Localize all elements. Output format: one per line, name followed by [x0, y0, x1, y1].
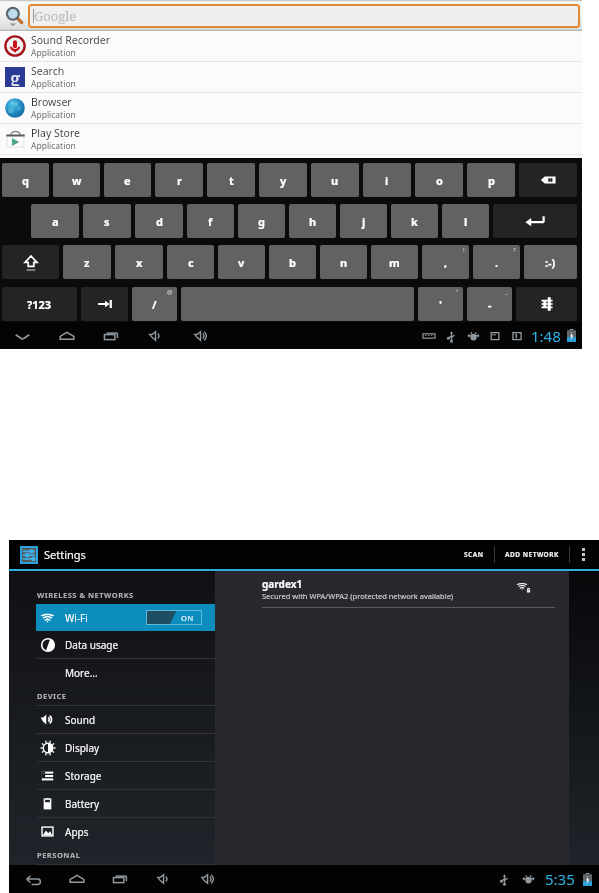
button[interactable]: More options: [570, 540, 596, 569]
staticText: PERSONAL: [37, 850, 81, 860]
staticText: o: [436, 173, 443, 188]
button[interactable]: Hide keyboard: [9, 323, 35, 349]
button[interactable]: Display: [9, 734, 215, 761]
staticText: ?: [513, 246, 516, 254]
button[interactable]: t: [207, 163, 255, 197]
staticText: d: [156, 214, 163, 229]
button[interactable]: Back: [20, 866, 46, 892]
button[interactable]: SHIFT: [2, 245, 59, 279]
staticText: .: [495, 255, 499, 270]
button[interactable]: ,: [422, 245, 469, 279]
button[interactable]: ?123: [2, 287, 77, 321]
button[interactable]: w: [53, 163, 100, 197]
staticText: 5:35: [545, 869, 575, 889]
staticText: More...: [65, 666, 98, 680]
button[interactable]: Wi-Fi: [36, 604, 215, 631]
staticText: gardex1: [262, 577, 303, 591]
staticText: Sound Recorder: [31, 33, 110, 47]
button[interactable]: m: [371, 245, 418, 279]
button[interactable]: Home: [64, 866, 90, 892]
button[interactable]: Apps: [9, 818, 215, 845]
staticText: c: [188, 255, 194, 270]
button[interactable]: i: [363, 163, 411, 197]
button[interactable]: SETT: [516, 287, 577, 321]
button[interactable]: s: [83, 204, 131, 238]
button[interactable]: Volume down: [144, 323, 170, 349]
staticText: Application: [31, 109, 76, 121]
staticText: _: [505, 288, 508, 296]
button[interactable]: a: [31, 204, 79, 238]
button[interactable]: -: [467, 287, 512, 321]
button[interactable]: Battery: [9, 790, 215, 817]
button[interactable]: p: [467, 163, 515, 197]
button[interactable]: Volume down: [152, 866, 178, 892]
button[interactable]: d: [135, 204, 183, 238]
staticText: w: [72, 173, 82, 188]
button[interactable]: Browser: [0, 93, 582, 124]
button[interactable]: Home: [54, 323, 80, 349]
staticText: Search: [31, 64, 65, 78]
button[interactable]: Play Store: [0, 124, 582, 155]
button[interactable]: /: [132, 287, 177, 321]
button[interactable]: k: [391, 204, 438, 238]
staticText: e: [124, 173, 131, 188]
button[interactable]: Recents: [99, 323, 125, 349]
button[interactable]: o: [415, 163, 463, 197]
button[interactable]: l: [442, 204, 489, 238]
button[interactable]: Recents: [108, 866, 134, 892]
button[interactable]: n: [320, 245, 367, 279]
staticText: Storage: [65, 769, 102, 783]
button[interactable]: Volume up: [189, 323, 215, 349]
staticText: Secured with WPA/WPA2 (protected network…: [262, 591, 454, 601]
button[interactable]: h: [289, 204, 336, 238]
staticText: i: [385, 173, 389, 188]
button[interactable]: c: [167, 245, 214, 279]
button[interactable]: g: [0, 62, 582, 93]
button[interactable]: Storage: [9, 762, 215, 789]
button[interactable]: z: [63, 245, 111, 279]
button[interactable]: gardex1: [215, 571, 569, 608]
button[interactable]: Search: [0, 0, 582, 31]
staticText: f: [208, 214, 213, 229]
button[interactable]: q: [2, 163, 49, 197]
staticText: WIRELESS & NETWORKS: [37, 590, 134, 600]
button[interactable]: y: [259, 163, 307, 197]
button[interactable]: :-): [524, 245, 577, 279]
button[interactable]: ENTER: [493, 204, 577, 238]
staticText: Sound: [65, 713, 96, 727]
staticText: Display: [65, 741, 100, 755]
staticText: y: [280, 173, 287, 188]
staticText: u: [331, 173, 339, 188]
button[interactable]: Sound Recorder: [0, 31, 582, 62]
staticText: -: [488, 297, 492, 312]
button[interactable]: e: [104, 163, 151, 197]
button[interactable]: f: [187, 204, 234, 238]
staticText: r: [177, 173, 182, 188]
button[interactable]: u: [311, 163, 359, 197]
button[interactable]: Data usage: [9, 631, 215, 658]
staticText: Application: [31, 78, 76, 90]
button[interactable]: j: [340, 204, 387, 238]
staticText: /: [152, 297, 157, 312]
staticText: Play Store: [31, 126, 80, 140]
button[interactable]: DEL: [519, 163, 577, 197]
button[interactable]: SCAN: [454, 543, 494, 566]
button[interactable]: b: [269, 245, 316, 279]
button[interactable]: r: [155, 163, 203, 197]
staticText: j: [362, 214, 366, 229]
button[interactable]: More...: [9, 659, 215, 686]
staticText: SCAN: [464, 550, 484, 559]
button[interactable]: TAB: [81, 287, 128, 321]
staticText: ?123: [27, 297, 52, 312]
button[interactable]: Volume up: [196, 866, 222, 892]
staticText: q: [22, 173, 29, 188]
button[interactable]: Sound: [9, 706, 215, 733]
button[interactable]: ': [418, 287, 463, 321]
button[interactable]: ADD NETWORK: [495, 543, 569, 566]
button[interactable]: .: [473, 245, 520, 279]
button[interactable]: g: [238, 204, 285, 238]
button[interactable]: v: [218, 245, 265, 279]
button[interactable]: x: [115, 245, 163, 279]
staticText: z: [84, 255, 90, 270]
